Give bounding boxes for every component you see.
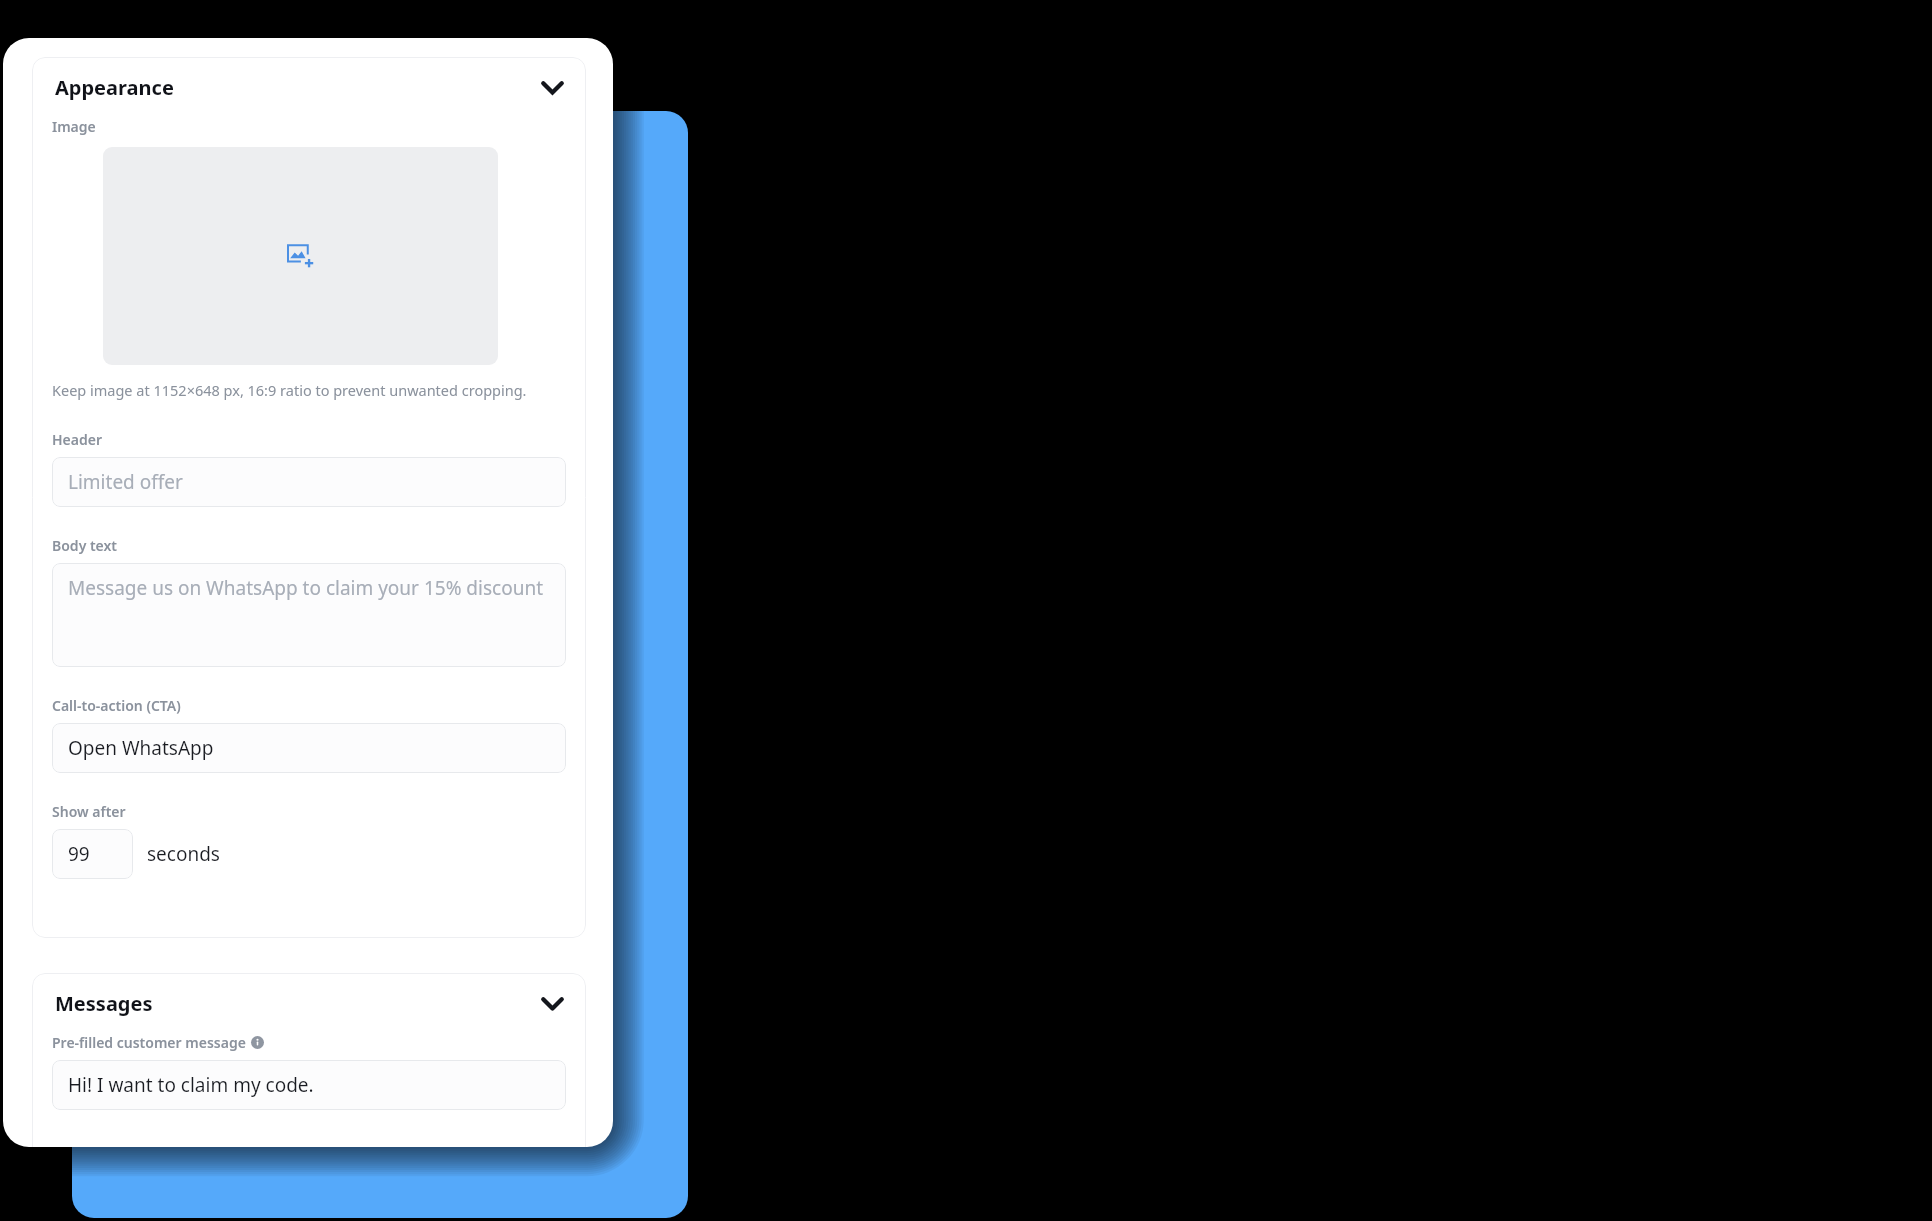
staticText: Message us on WhatsApp to claim your 15%… bbox=[68, 575, 544, 601]
button[interactable]: Hi! I want to claim my code. bbox=[52, 1060, 566, 1110]
staticText: Messages bbox=[55, 990, 153, 1017]
button[interactable]: Message us on WhatsApp to claim your 15%… bbox=[52, 563, 566, 667]
staticText: Body text bbox=[52, 536, 118, 555]
button[interactable]: Messages bbox=[32, 973, 586, 1033]
staticText: 99 bbox=[68, 841, 90, 867]
staticText: Header bbox=[52, 430, 102, 449]
staticText: Appearance bbox=[55, 74, 174, 101]
staticText: Keep image at 1152×648 px, 16:9 ratio to… bbox=[52, 380, 527, 400]
staticText: Image bbox=[52, 117, 96, 136]
button[interactable]: Add image bbox=[103, 147, 498, 365]
button[interactable]: Collapse Messages section bbox=[536, 987, 568, 1019]
staticText: Show after bbox=[52, 802, 126, 821]
button[interactable]: Appearance bbox=[32, 57, 586, 117]
staticText: Open WhatsApp bbox=[68, 735, 214, 761]
button[interactable]: Collapse Appearance section bbox=[536, 71, 568, 103]
staticText: Pre-filled customer message bbox=[52, 1033, 246, 1052]
staticText: Hi! I want to claim my code. bbox=[68, 1072, 314, 1098]
staticText: seconds bbox=[147, 841, 220, 867]
button[interactable]: Open WhatsApp bbox=[52, 723, 566, 773]
staticText: Call-to-action (CTA) bbox=[52, 696, 181, 715]
button[interactable]: 99 bbox=[52, 829, 133, 879]
button[interactable]: Limited offer bbox=[52, 457, 566, 507]
staticText: Limited offer bbox=[68, 469, 183, 495]
